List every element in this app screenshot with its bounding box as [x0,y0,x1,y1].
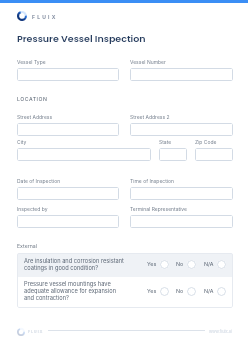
button[interactable]: Yes [147,260,169,269]
staticText: Are insulation and corrosion resistant c… [24,257,126,271]
button[interactable] [195,148,233,161]
staticText: Street Address 2 [130,114,170,120]
staticText: Date of Inspection [17,178,61,184]
button[interactable] [159,148,187,161]
staticText: Yes [147,288,157,295]
button[interactable] [17,148,151,161]
staticText: Pressure vessel mountings have adequate … [24,280,126,301]
staticText: N/A [204,261,214,268]
button[interactable]: Yes [147,287,169,296]
button[interactable]: No [176,287,196,296]
button[interactable]: No [176,260,196,269]
button[interactable] [130,187,233,200]
staticText: Zip Code [195,139,217,145]
button[interactable] [17,187,119,200]
button[interactable]: N/A [204,287,226,296]
staticText: City [17,139,27,145]
button[interactable] [130,68,233,81]
staticText: Inspected by [17,206,48,212]
staticText: Vessel Number [130,59,166,65]
staticText: www.fluix.ai [209,329,233,334]
staticText: Pressure Vessel Inspection [17,32,146,45]
button[interactable] [130,215,233,228]
button[interactable] [17,68,119,81]
staticText: LOCATION [17,96,48,102]
staticText: No [176,261,184,268]
button[interactable]: N/A [204,260,226,269]
staticText: FLUIX [28,330,44,334]
staticText: No [176,288,184,295]
button[interactable] [17,215,119,228]
button[interactable] [17,123,119,136]
button[interactable] [130,123,233,136]
staticText: N/A [204,288,214,295]
staticText: Yes [147,261,157,268]
staticText: Terminal Representative [130,206,187,212]
staticText: External [17,243,37,249]
staticText: FLUIX [32,14,58,20]
staticText: Street Address [17,114,53,120]
staticText: State [159,139,172,145]
staticText: Vessel Type [17,59,46,65]
staticText: Time of Inspection [130,178,174,184]
